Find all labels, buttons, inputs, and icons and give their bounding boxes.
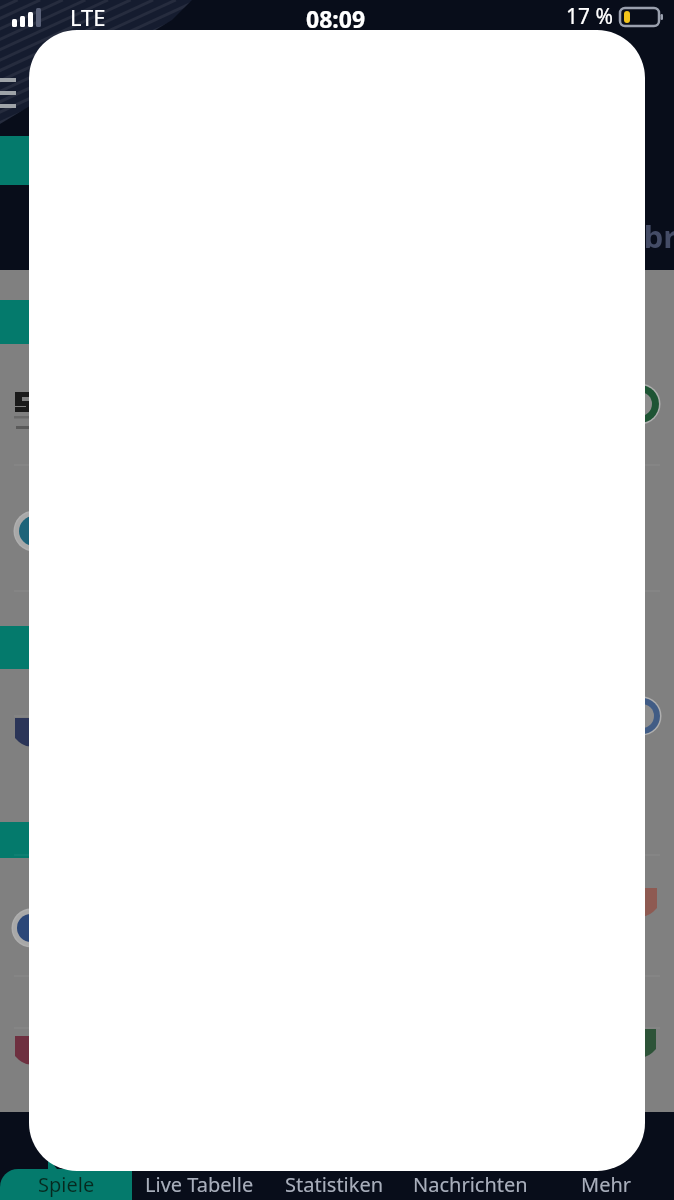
- button[interactable]: Mehr: [538, 1169, 674, 1200]
- button[interactable]: Live Tabelle: [132, 1169, 267, 1200]
- button[interactable]: [29, 30, 645, 1171]
- button[interactable]: Statistiken: [267, 1169, 402, 1200]
- button[interactable]: Spiele: [0, 1169, 132, 1200]
- button[interactable]: Nachrichten: [402, 1169, 538, 1200]
- staticText: LTE: [70, 2, 106, 32]
- staticText: 08:09: [306, 3, 366, 34]
- staticText: Spiele: [38, 1171, 95, 1198]
- staticText: Mehr: [581, 1171, 632, 1198]
- button[interactable]: Menu: [0, 70, 42, 116]
- staticText: 17. Februar: [556, 215, 674, 257]
- staticText: Nachrichten: [413, 1171, 528, 1198]
- staticText: Statistiken: [285, 1171, 384, 1198]
- staticText: Live Tabelle: [145, 1171, 254, 1198]
- staticText: 17 %: [566, 2, 613, 31]
